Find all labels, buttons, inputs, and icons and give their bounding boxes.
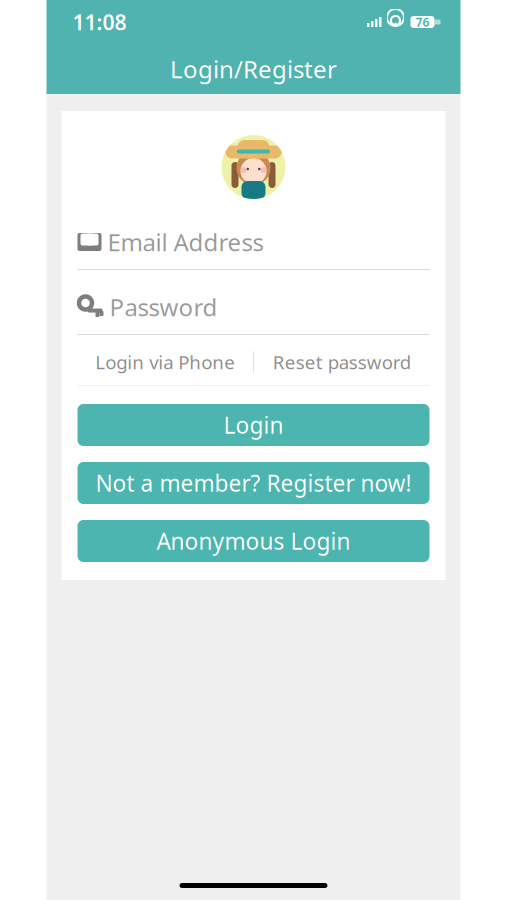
button[interactable]: Login via Phone — [77, 347, 253, 377]
staticText: 11:08 — [72, 8, 126, 36]
staticText: Email Address — [107, 226, 263, 258]
button[interactable]: Reset password — [254, 347, 429, 377]
staticText: 76 — [415, 14, 429, 30]
button[interactable]: Anonymous Login — [77, 520, 429, 562]
staticText: Login/Register — [170, 53, 337, 85]
staticText: Anonymous Login — [156, 526, 350, 556]
staticText: Login via Phone — [95, 350, 235, 374]
staticText: Login — [223, 410, 283, 440]
button[interactable]: Not a member? Register now! — [77, 462, 429, 504]
staticText: Password — [109, 291, 217, 323]
staticText: Not a member? Register now! — [95, 468, 411, 498]
button[interactable]: Login — [77, 404, 429, 446]
staticText: Reset password — [273, 350, 411, 374]
